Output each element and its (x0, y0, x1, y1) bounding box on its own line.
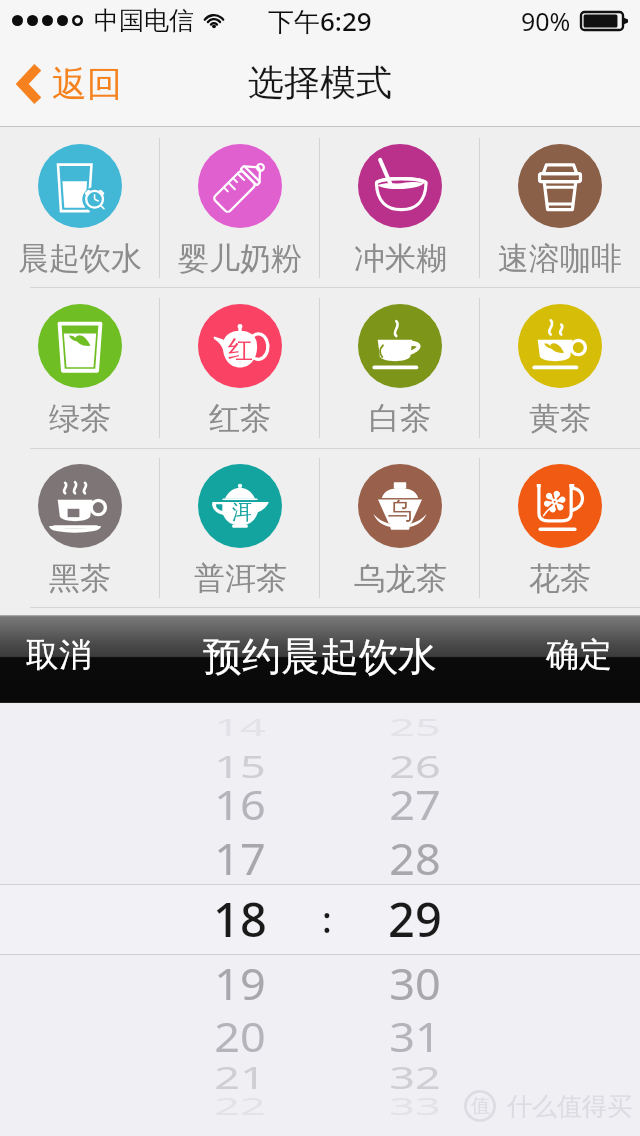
staticText: 32 (389, 1055, 441, 1098)
button[interactable]: 速溶咖啡 (480, 128, 640, 288)
staticText: 21 (214, 1055, 266, 1098)
button[interactable]: 黄茶 (480, 288, 640, 448)
staticText: 速溶咖啡 (498, 239, 622, 278)
button[interactable]: 晨起饮水 (0, 128, 160, 288)
staticText: 27 (389, 778, 441, 831)
staticText: 90% (521, 4, 571, 38)
staticText: 22 (214, 1090, 266, 1122)
staticText: 20 (214, 1010, 266, 1063)
staticText: : (322, 895, 332, 944)
button[interactable]: 取消 (10, 630, 108, 680)
staticText: 值 (471, 1094, 490, 1118)
staticText: 选择模式 (248, 60, 392, 105)
staticText: 18 (213, 887, 267, 951)
button[interactable]: 返回 (0, 52, 138, 116)
button[interactable]: 黑茶 (0, 448, 160, 608)
button[interactable]: 确定 (530, 630, 628, 680)
staticText: 红茶 (209, 399, 271, 438)
staticText: 普洱茶 (194, 559, 287, 598)
button[interactable]: 白茶 (320, 288, 480, 448)
staticText: 19 (214, 953, 266, 1012)
staticText: 乌 (388, 496, 412, 526)
staticText: 28 (389, 828, 441, 887)
button[interactable]: 绿茶 (0, 288, 160, 448)
button[interactable]: 花茶 (480, 448, 640, 608)
staticText: 晨起饮水 (18, 239, 142, 278)
staticText: 25 (389, 711, 441, 743)
staticText: 黑茶 (49, 559, 111, 598)
button[interactable]: 冲米糊 (320, 128, 480, 288)
staticText: 26 (389, 744, 441, 787)
button[interactable]: 红 (160, 288, 320, 448)
button[interactable]: 婴儿奶粉 (160, 128, 320, 288)
staticText: 16 (214, 778, 266, 831)
staticText: 什么值得买 (507, 1091, 632, 1122)
staticText: 预约晨起饮水 (203, 632, 437, 681)
button[interactable]: 洱 (160, 448, 320, 608)
staticText: 洱 (232, 500, 252, 525)
staticText: 17 (214, 828, 266, 887)
staticText: 29 (388, 887, 442, 951)
staticText: 白茶 (369, 399, 431, 438)
staticText: 中国电信 (94, 5, 194, 36)
staticText: 31 (389, 1010, 441, 1063)
staticText: 下午6:29 (268, 3, 372, 39)
staticText: 33 (389, 1090, 441, 1122)
staticText: 红 (228, 334, 253, 365)
staticText: 婴儿奶粉 (178, 239, 302, 278)
staticText: 返回 (52, 62, 122, 106)
staticText: 黄茶 (529, 399, 591, 438)
staticText: 冲米糊 (354, 239, 447, 278)
staticText: 30 (389, 953, 441, 1012)
staticText: 15 (214, 744, 266, 787)
staticText: 14 (214, 711, 266, 743)
staticText: 花茶 (529, 559, 591, 598)
staticText: 绿茶 (49, 399, 111, 438)
staticText: 乌龙茶 (354, 559, 447, 598)
button[interactable]: 乌 (320, 448, 480, 608)
